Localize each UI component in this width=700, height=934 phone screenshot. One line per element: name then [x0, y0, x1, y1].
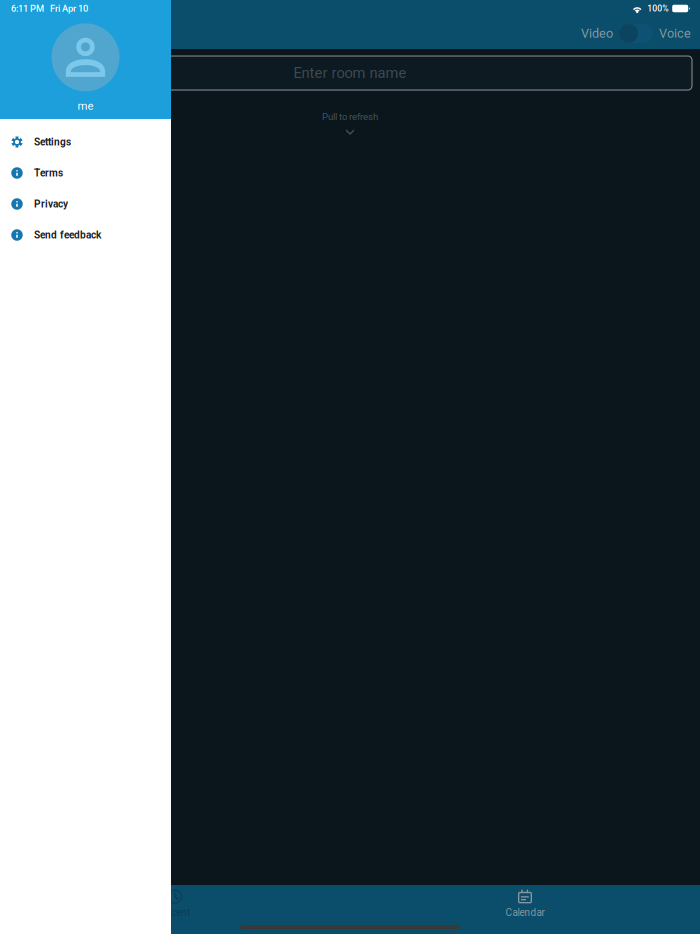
- staticText: Send feedback: [34, 229, 101, 241]
- staticText: Settings: [34, 136, 71, 148]
- button[interactable]: Privacy: [0, 188, 171, 219]
- staticText: Voice: [659, 26, 691, 41]
- staticText: 100%: [647, 3, 668, 14]
- staticText: Recent: [160, 907, 190, 918]
- staticText: Fri Apr 10: [50, 3, 88, 14]
- button[interactable]: Calendar: [350, 886, 700, 922]
- staticText: Pull to refresh: [322, 111, 378, 122]
- staticText: me: [77, 99, 93, 113]
- button[interactable]: Switch between video and voice: [619, 24, 653, 43]
- button[interactable]: Enter room name: [0, 56, 700, 90]
- button[interactable]: Recent: [0, 886, 350, 922]
- button[interactable]: me: [0, 23, 171, 113]
- staticText: 6:11 PM: [11, 3, 44, 14]
- staticText: Privacy: [34, 198, 68, 210]
- button[interactable]: Send feedback: [0, 219, 171, 250]
- staticText: Calendar: [505, 907, 544, 918]
- staticText: Video: [581, 26, 613, 41]
- staticText: Terms: [34, 167, 63, 179]
- button[interactable]: Settings: [0, 126, 171, 157]
- button[interactable]: Terms: [0, 157, 171, 188]
- staticText: Enter room name: [293, 64, 406, 82]
